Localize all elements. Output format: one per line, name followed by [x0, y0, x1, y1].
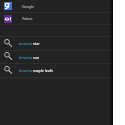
button[interactable]: Yahoo: [0, 13, 113, 24]
staticText: toronto sun: [19, 55, 40, 60]
button[interactable]: toronto maple leafs: [0, 64, 113, 77]
staticText: Yahoo: [22, 16, 33, 21]
button[interactable]: toronto star: [0, 37, 113, 50]
staticText: Google: [22, 4, 35, 9]
button[interactable]: Google: [0, 0, 113, 12]
staticText: toronto maple leafs: [19, 68, 53, 73]
staticText: toronto star: [19, 41, 40, 46]
button[interactable]: toronto sun: [0, 51, 113, 63]
